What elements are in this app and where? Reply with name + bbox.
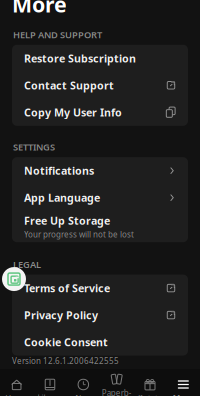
staticText: SETTINGS	[13, 141, 55, 153]
staticText: Home	[5, 393, 28, 396]
staticText: Points	[138, 393, 162, 396]
staticText: Paperback	[102, 388, 132, 396]
staticText: LEGAL	[13, 258, 41, 271]
button[interactable]: New	[67, 374, 100, 396]
button[interactable]: Consent preferences	[2, 267, 26, 291]
button[interactable]: Points	[133, 374, 167, 396]
button[interactable]: Terms of Service	[12, 275, 188, 302]
staticText: More	[12, 0, 67, 18]
button[interactable]: Restore Subscription	[12, 45, 188, 72]
staticText: Restore Subscription	[24, 51, 136, 65]
button[interactable]: Free Up Storage	[12, 211, 188, 242]
staticText: HELP AND SUPPORT	[13, 28, 102, 41]
button[interactable]: Copy My User Info	[12, 99, 188, 126]
button[interactable]: Contact Support	[12, 72, 188, 99]
staticText: Library	[37, 393, 62, 396]
staticText: More	[173, 393, 194, 396]
button[interactable]: Cookie Consent	[12, 329, 188, 356]
staticText: Free Up Storage	[24, 213, 110, 228]
staticText: Cookie Consent	[24, 335, 108, 349]
button[interactable]: Home	[0, 374, 33, 396]
staticText: Contact Support	[24, 78, 114, 92]
staticText: Privacy Policy	[24, 308, 98, 322]
button[interactable]: Library	[33, 374, 67, 396]
button[interactable]: Notifications	[12, 157, 188, 184]
button[interactable]: Paperback	[100, 369, 133, 396]
button[interactable]: App Language	[12, 184, 188, 211]
staticText: Version 12.6.1.2006422555	[12, 356, 119, 366]
staticText: Notifications	[24, 164, 94, 178]
staticText: App Language	[24, 191, 100, 205]
button[interactable]: Privacy Policy	[12, 302, 188, 329]
staticText: New	[75, 393, 91, 396]
staticText: Copy My User Info	[24, 105, 122, 119]
staticText: Your progress will not be lost	[24, 229, 134, 240]
staticText: Terms of Service	[24, 281, 110, 295]
button[interactable]: More	[167, 374, 200, 396]
